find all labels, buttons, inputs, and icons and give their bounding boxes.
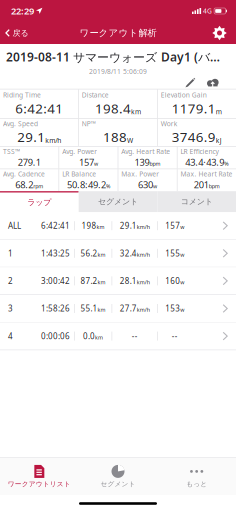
staticText: NP™ [82, 119, 96, 128]
button[interactable]: ラップ [0, 191, 79, 212]
staticText: km/h [137, 306, 150, 313]
staticText: 3 [8, 303, 13, 314]
staticText: 4 [8, 331, 13, 341]
staticText: km [97, 223, 105, 230]
staticText: 0:00:06 [41, 331, 70, 341]
staticText: 157 [165, 220, 180, 231]
staticText: Elevation Gain [161, 91, 207, 99]
staticText: コメント [181, 197, 213, 207]
staticText: 1:58:26 [41, 303, 70, 314]
staticText: bpm [150, 160, 161, 167]
staticText: 6:42:41 [15, 99, 63, 117]
staticText: Avg. Heart Rate [121, 147, 170, 156]
button[interactable]: セグメント [79, 458, 157, 495]
staticText: 28.1 [120, 276, 137, 286]
staticText: 87.2 [81, 276, 98, 286]
staticText: 2019/8/11 5:06:09 [89, 67, 147, 76]
staticText: % [224, 160, 228, 167]
staticText: Max. Power [121, 170, 159, 178]
staticText: -- [172, 331, 178, 341]
staticText: Avg. Speed [3, 119, 38, 128]
staticText: km [98, 306, 106, 313]
staticText: 3746.9 [172, 128, 216, 146]
staticText: LR Efficiency [180, 147, 218, 156]
staticText: 戻る [12, 28, 28, 38]
button[interactable]: コメント [157, 191, 236, 212]
staticText: 43.4·43.9 [185, 156, 224, 168]
staticText: 160 [165, 276, 180, 286]
staticText: 1:43:25 [41, 248, 70, 259]
staticText: セグメント [98, 197, 138, 207]
staticText: kJ [216, 136, 222, 145]
staticText: km [98, 251, 106, 258]
staticText: w [180, 251, 184, 258]
button[interactable]: ALL [0, 212, 236, 240]
staticText: 201 [194, 178, 209, 191]
button[interactable]: 3 [0, 295, 236, 323]
staticText: km [131, 107, 141, 116]
button[interactable]: ワークアウトリスト [0, 458, 79, 495]
staticText: 0.0 [83, 331, 95, 341]
staticText: km/h [137, 279, 150, 286]
staticText: % [106, 183, 110, 190]
staticText: 188 [103, 128, 127, 146]
staticText: ALL [8, 220, 21, 231]
button[interactable]: Upload [201, 77, 224, 89]
staticText: 68.2 [15, 178, 33, 191]
staticText: Max. Heart Rate [180, 170, 232, 178]
staticText: 2 [8, 276, 13, 286]
button[interactable]: 2 [0, 267, 236, 295]
staticText: 3:00:42 [41, 276, 70, 286]
staticText: 2019-08-11 サマーウォーズ Day1 (バ… [6, 49, 220, 65]
staticText: 29.1 [17, 128, 45, 146]
staticText: 55.1 [81, 303, 98, 314]
staticText: 1179.1 [172, 99, 216, 117]
staticText: w [180, 223, 184, 230]
button[interactable]: 1 [0, 240, 236, 267]
button[interactable]: セグメント [79, 191, 157, 212]
staticText: 1 [8, 248, 13, 259]
staticText: 27.7 [120, 303, 137, 314]
staticText: 279.1 [18, 156, 41, 168]
staticText: 50.8:49.2 [67, 178, 106, 191]
staticText: W [127, 136, 133, 145]
staticText: km/h [45, 136, 61, 145]
button[interactable]: 4 [0, 323, 236, 350]
staticText: Avg. Cadence [3, 170, 45, 178]
staticText: km [98, 279, 106, 286]
staticText: もっと [186, 480, 207, 488]
staticText: 29.1 [120, 220, 137, 231]
staticText: Work [161, 119, 178, 128]
staticText: ワークアウトリスト [8, 480, 71, 488]
button[interactable]: もっと [157, 458, 236, 495]
staticText: Distance [82, 91, 109, 99]
staticText: km/h [137, 251, 150, 258]
staticText: 56.2 [81, 248, 98, 259]
staticText: TSS™ [3, 147, 20, 156]
button[interactable]: Settings [207, 22, 232, 44]
staticText: -- [132, 331, 138, 341]
staticText: rpm [33, 183, 43, 190]
button[interactable]: 戻る [0, 22, 33, 44]
staticText: 155 [165, 248, 180, 259]
staticText: 22:29 [11, 5, 34, 17]
staticText: 198.4 [95, 99, 131, 117]
staticText: 32.4 [120, 248, 137, 259]
staticText: LR Balance [62, 170, 96, 178]
staticText: 157 [79, 156, 94, 168]
staticText: ワークアウト解析 [79, 27, 156, 39]
staticText: 6:42:41 [41, 220, 70, 231]
button[interactable]: Edit [180, 77, 201, 89]
staticText: 198 [82, 220, 97, 231]
staticText: km [95, 334, 103, 341]
staticText: w [153, 183, 157, 190]
staticText: 630 [138, 178, 153, 191]
staticText: bpm [209, 183, 220, 190]
staticText: Avg. Power [62, 147, 97, 156]
staticText: m [216, 107, 222, 116]
staticText: ラップ [27, 197, 51, 207]
staticText: km/h [137, 223, 150, 230]
staticText: w [180, 279, 184, 286]
staticText: 4G [203, 7, 212, 15]
staticText: Riding Time [3, 91, 41, 99]
